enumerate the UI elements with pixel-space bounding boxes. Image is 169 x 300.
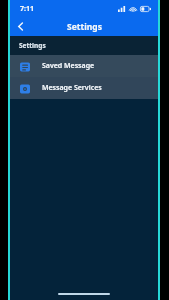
button[interactable]: Back [10, 17, 30, 36]
staticText: Settings [67, 21, 102, 33]
button[interactable]: Message Services [10, 77, 158, 99]
staticText: Saved Message [42, 61, 95, 71]
staticText: Message Services [42, 83, 102, 93]
staticText: Settings [19, 41, 46, 50]
staticText: 7:11 [20, 4, 34, 14]
button[interactable]: Saved Message [10, 55, 158, 77]
